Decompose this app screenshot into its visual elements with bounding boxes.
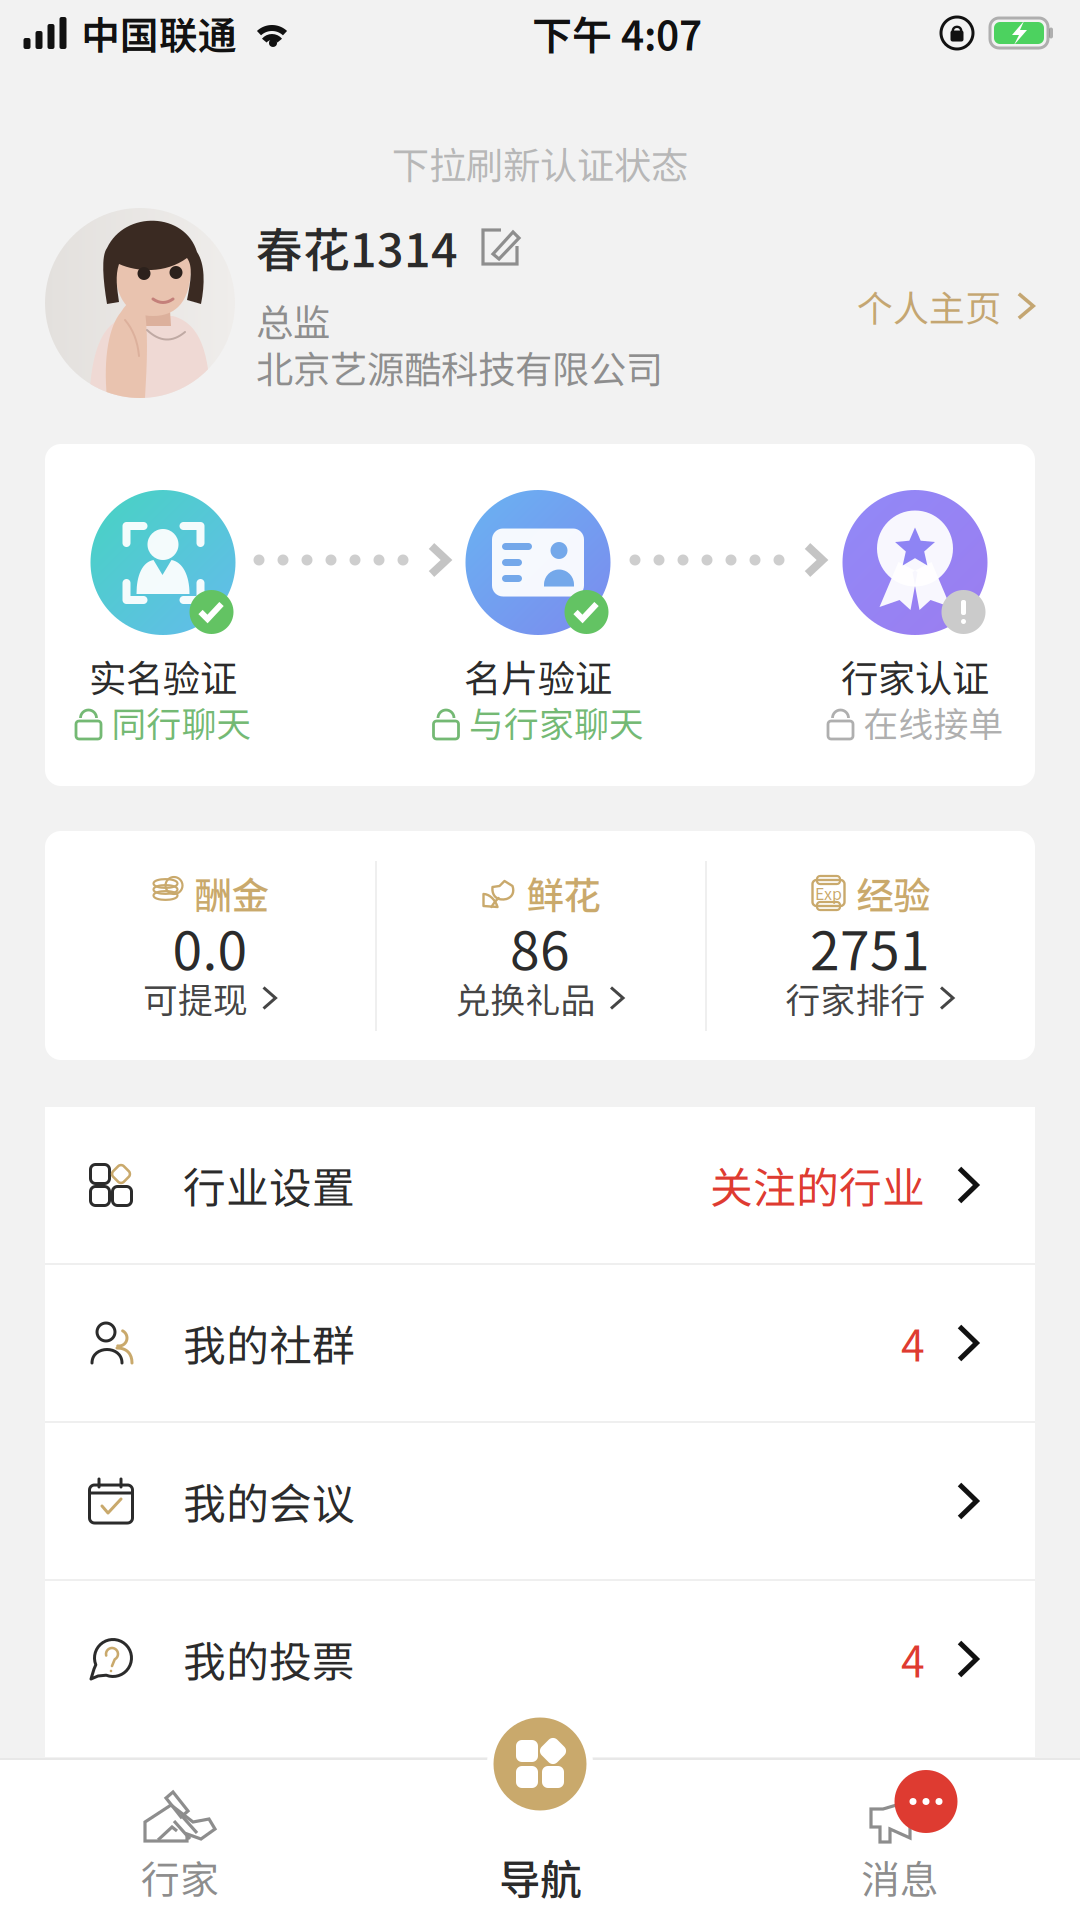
staticText: 可提现 (143, 973, 248, 1023)
staticText: 行家认证 (841, 649, 989, 703)
staticText: 北京艺源酷科技有限公司 (256, 340, 663, 394)
button[interactable]: 名片验证 (388, 490, 688, 750)
button[interactable]: 个人主页 (855, 284, 1035, 328)
staticText: 名片验证 (464, 649, 612, 703)
staticText: 在线接单 (863, 697, 1003, 747)
button[interactable]: 行家认证 (765, 490, 1065, 750)
button[interactable]: 我的投票 (45, 1581, 1035, 1737)
staticText: 0.0 (172, 908, 247, 986)
button[interactable]: 行家 (0, 1758, 360, 1920)
staticText: 导航 (499, 1847, 581, 1907)
button[interactable]: 导航 (486, 1710, 594, 1818)
staticText: 我的社群 (183, 1312, 355, 1374)
button[interactable]: 酬金 (45, 831, 375, 1060)
staticText: 与行家聊天 (469, 697, 644, 747)
staticText: 兑换礼品 (455, 973, 595, 1023)
staticText: 行家排行 (785, 973, 925, 1023)
button[interactable]: 实名验证 (13, 490, 313, 750)
staticText: 4 (901, 1628, 925, 1690)
staticText: 关注的行业 (710, 1154, 925, 1216)
button[interactable]: 我的会议 (45, 1423, 1035, 1579)
staticText: 中国联通 (81, 5, 237, 61)
staticText: 行业设置 (183, 1154, 355, 1216)
staticText: 下拉刷新认证状态 (392, 136, 688, 190)
staticText: 鲜花 (526, 866, 600, 920)
staticText: 我的投票 (183, 1628, 355, 1690)
staticText: 同行聊天 (111, 697, 251, 747)
staticText: 经验 (856, 866, 930, 920)
staticText: 2751 (810, 908, 930, 986)
staticText: 春花1314 (256, 213, 458, 281)
button[interactable]: 行业设置 (45, 1107, 1035, 1263)
staticText: 实名验证 (89, 649, 237, 703)
button[interactable]: 鲜花 (375, 831, 705, 1060)
staticText: Exp (815, 881, 842, 905)
staticText: 4 (901, 1312, 925, 1374)
button[interactable]: 我的社群 (45, 1265, 1035, 1421)
staticText: 消息 (861, 1849, 939, 1905)
staticText: 下午 4:07 (532, 4, 702, 62)
button[interactable]: 消息 (720, 1758, 1080, 1920)
staticText: 行家 (141, 1849, 219, 1905)
staticText: 个人主页 (857, 280, 1001, 332)
staticText: 总监 (256, 293, 330, 347)
button[interactable]: 导航 (360, 1758, 720, 1920)
staticText: 我的会议 (183, 1470, 355, 1532)
staticText: 酬金 (194, 866, 268, 920)
staticText: 86 (510, 908, 570, 986)
button[interactable]: Exp (705, 831, 1035, 1060)
